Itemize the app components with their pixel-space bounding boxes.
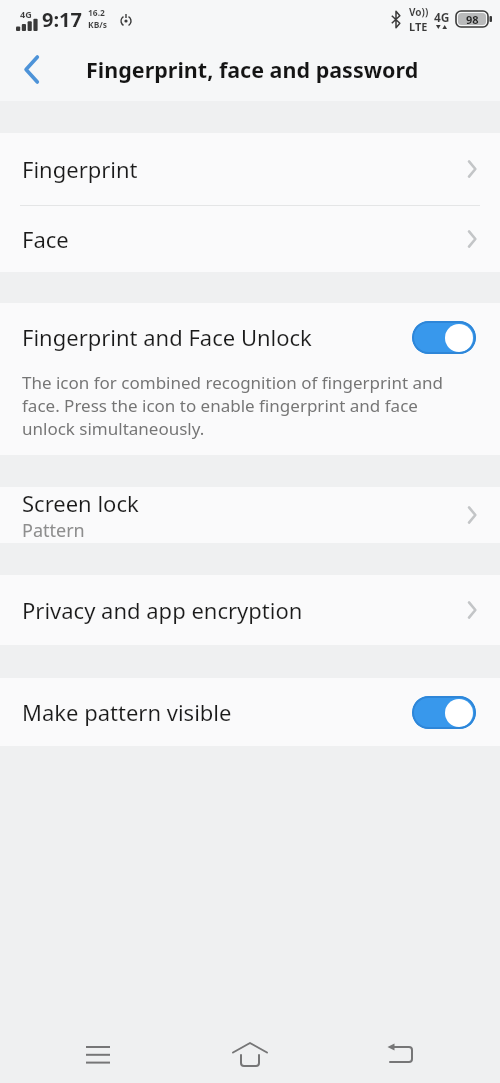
button[interactable]: Privacy and app encryption [0,575,500,645]
staticText: LTE [409,19,428,34]
button[interactable] [0,38,62,101]
staticText: 98 [466,12,479,27]
staticText: Fingerprint [22,154,138,184]
staticText: face. Press the icon to enable fingerpri… [22,394,418,417]
button[interactable]: Make pattern visible [0,678,500,746]
staticText: 16.2 [88,7,105,19]
button[interactable] [412,321,476,354]
staticText: KB/s [88,19,108,31]
button[interactable]: Fingerprint and Face Unlock [0,303,500,371]
button[interactable] [220,1024,280,1083]
staticText: 9:17 [42,6,82,33]
staticText: 4G [20,8,32,20]
staticText: Fingerprint and Face Unlock [22,322,312,352]
button[interactable]: Face [0,206,500,272]
staticText: Make pattern visible [22,697,232,727]
staticText: The icon for combined recognition of fin… [22,371,444,394]
button[interactable]: Screen lock [0,487,500,543]
button[interactable] [68,1024,128,1083]
staticText: Screen lock [22,488,139,518]
staticText: Fingerprint, face and password [86,55,419,84]
staticText: Privacy and app encryption [22,595,303,625]
staticText: Face [22,224,69,254]
staticText: 4G [434,9,450,25]
button[interactable]: Fingerprint [0,133,500,205]
button[interactable] [370,1024,430,1083]
staticText: Vo)) [409,5,429,19]
staticText: unlock simultaneously. [22,417,205,440]
staticText: Pattern [22,518,85,543]
button[interactable] [412,696,476,729]
